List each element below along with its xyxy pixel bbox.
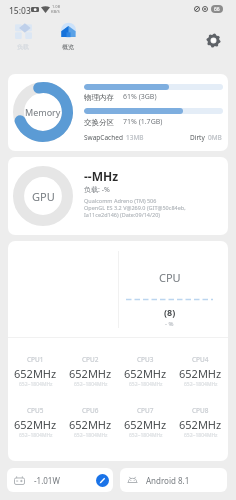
staticText: 652~1804MHz [184, 381, 218, 388]
staticText: Qualcomm Adreno (TM) 506 [84, 197, 157, 204]
staticText: 负载 [17, 43, 29, 51]
button[interactable]: CPU5 [8, 389, 63, 440]
button[interactable]: Settings [200, 27, 226, 53]
staticText: CPU3 [137, 355, 154, 364]
staticText: -1.01W [34, 475, 60, 486]
staticText: 652~1804MHz [74, 432, 108, 439]
button[interactable]: CPU6 [63, 389, 118, 440]
staticText: 652~1804MHz [74, 381, 108, 388]
staticText: 652~1804MHz [184, 432, 218, 439]
staticText: CPU7 [137, 406, 154, 415]
staticText: 652MHz [14, 417, 57, 432]
staticText: CPU4 [192, 355, 209, 364]
staticText: Ia11ce2d146) (Date:09/14/20) [84, 211, 160, 218]
button[interactable]: Edit [96, 474, 109, 487]
staticText: 652~1804MHz [19, 432, 53, 439]
button[interactable]: -1.01W [7, 468, 113, 492]
staticText: SwapCached [84, 133, 123, 142]
staticText: 652~1804MHz [129, 381, 163, 388]
staticText: CPU [159, 270, 181, 285]
staticText: 652MHz [69, 417, 112, 432]
staticText: 15:03 [9, 5, 31, 17]
staticText: 652MHz [179, 366, 222, 381]
staticText: Android 8.1 [146, 475, 190, 486]
staticText: Dirty [190, 133, 205, 142]
staticText: --MHz [84, 168, 119, 184]
staticText: - % [165, 320, 174, 328]
staticText: 652MHz [69, 366, 112, 381]
button[interactable]: 概览 [50, 18, 86, 51]
staticText: 652MHz [124, 417, 167, 432]
staticText: 652MHz [14, 366, 57, 381]
staticText: 概览 [62, 43, 74, 51]
staticText: CPU2 [82, 355, 99, 364]
staticText: 61% (3GB) [123, 92, 157, 102]
button[interactable]: 负载 [5, 18, 41, 51]
staticText: 交换分区 [84, 118, 114, 127]
staticText: 物理内存 [84, 93, 114, 102]
staticText: OpenGL ES 3.2 V@269.0 (GIT@50c84eb, [84, 204, 186, 211]
staticText: 71% (1.7GB) [123, 117, 163, 127]
staticText: 652MHz [124, 366, 167, 381]
staticText: CPU1 [27, 355, 44, 364]
staticText: 负载: -% [84, 185, 110, 195]
button[interactable]: CPU7 [118, 389, 173, 440]
staticText: CPU5 [27, 406, 44, 415]
button[interactable]: CPU8 [173, 389, 228, 440]
staticText: 13MB [126, 133, 144, 142]
staticText: 652MHz [179, 417, 222, 432]
button[interactable]: Android 8.1 [120, 468, 227, 492]
staticText: CPU8 [192, 406, 209, 415]
button[interactable]: CPU4 [173, 338, 228, 389]
staticText: 652~1804MHz [129, 432, 163, 439]
staticText: 652~1804MHz [19, 381, 53, 388]
staticText: 66 [214, 6, 220, 13]
staticText: Memory [25, 106, 61, 118]
staticText: GPU [32, 189, 55, 204]
button[interactable]: CPU1 [8, 338, 63, 389]
button[interactable]: CPU2 [63, 338, 118, 389]
staticText: 0MB [208, 133, 222, 142]
staticText: 1.08 [52, 4, 60, 9]
staticText: (8) [164, 306, 176, 318]
staticText: KB/S [51, 9, 60, 14]
button[interactable]: CPU3 [118, 338, 173, 389]
staticText: CPU6 [82, 406, 99, 415]
